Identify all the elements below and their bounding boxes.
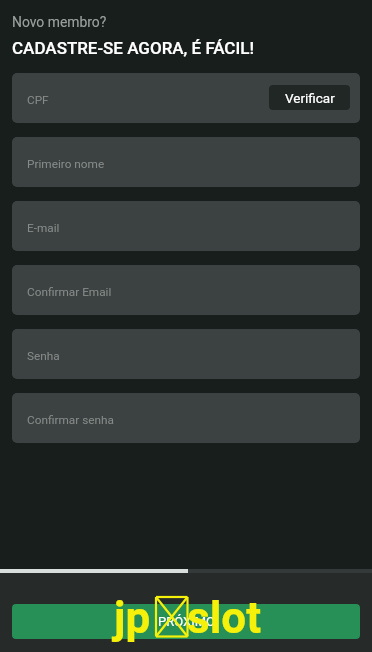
button[interactable]: Confirmar Email bbox=[12, 265, 360, 315]
staticText: Novo membro? bbox=[12, 14, 107, 30]
button[interactable]: Primeiro nome bbox=[12, 137, 360, 187]
staticText: Primeiro nome bbox=[27, 157, 105, 171]
staticText: slot bbox=[187, 592, 262, 644]
button[interactable]: CPF bbox=[12, 73, 360, 123]
button[interactable]: Senha bbox=[12, 329, 360, 379]
button[interactable]: Verificar bbox=[269, 85, 350, 110]
staticText: Confirmar senha bbox=[27, 413, 114, 427]
button[interactable]: PRÓXIMO bbox=[12, 604, 360, 639]
staticText: Verificar bbox=[285, 90, 335, 106]
staticText: CADASTRE-SE AGORA, É FÁCIL! bbox=[12, 38, 254, 58]
button[interactable]: Confirmar senha bbox=[12, 393, 360, 443]
staticText: PRÓXIMO bbox=[158, 614, 215, 629]
staticText: CPF bbox=[27, 93, 49, 107]
staticText: E-mail bbox=[27, 221, 60, 235]
staticText: Senha bbox=[27, 349, 60, 363]
staticText: Confirmar Email bbox=[27, 285, 112, 299]
staticText: jp bbox=[114, 592, 151, 644]
button[interactable]: E-mail bbox=[12, 201, 360, 251]
